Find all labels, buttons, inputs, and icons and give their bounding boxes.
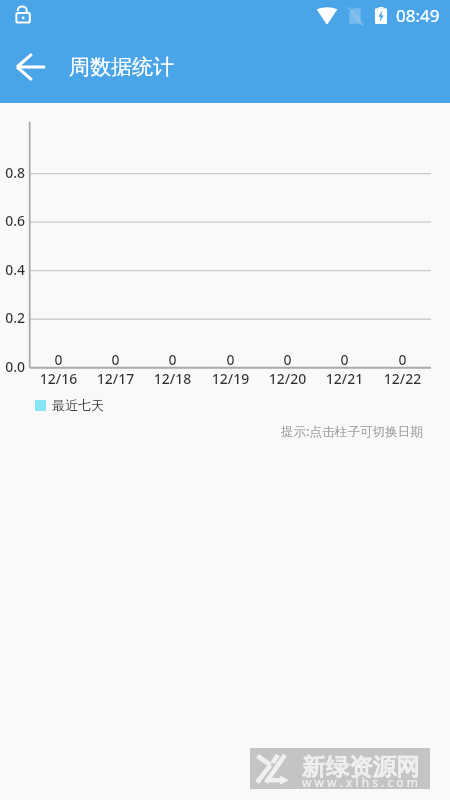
staticText: 0 (374, 350, 431, 369)
button[interactable]: 12/18 0 (144, 122, 201, 389)
staticText: 0 (202, 350, 259, 369)
staticText: 0.6 (0, 211, 25, 230)
staticText: w w w . x l h s . c o m (302, 774, 418, 790)
staticText: 0.0 (0, 357, 25, 376)
staticText: 0.4 (0, 260, 25, 279)
staticText: 提示:点击柱子可切换日期 (281, 423, 423, 440)
staticText: 周数据统计 (69, 54, 174, 80)
staticText: 0 (316, 350, 373, 369)
staticText: 12/16 (30, 369, 87, 388)
button[interactable]: 12/19 0 (202, 122, 259, 389)
staticText: 12/21 (316, 369, 373, 388)
staticText: 12/19 (202, 369, 259, 388)
button[interactable]: 12/22 0 (374, 122, 431, 389)
staticText: 0 (30, 350, 87, 369)
staticText: 0.2 (0, 308, 25, 327)
staticText: 08:49 (396, 4, 440, 27)
button[interactable]: 12/16 0 (30, 122, 87, 389)
staticText: 12/22 (374, 369, 431, 388)
staticText: 0 (87, 350, 144, 369)
button[interactable]: 12/20 0 (259, 122, 316, 389)
staticText: 0 (144, 350, 201, 369)
staticText: 12/18 (144, 369, 201, 388)
staticText: 最近七天 (52, 397, 104, 413)
staticText: 新绿资源网 (302, 752, 420, 782)
button[interactable]: Back (11, 47, 51, 87)
button[interactable]: 12/17 0 (87, 122, 144, 389)
staticText: 12/17 (87, 369, 144, 388)
staticText: 12/20 (259, 369, 316, 388)
staticText: 0 (259, 350, 316, 369)
button[interactable]: 12/21 0 (316, 122, 373, 389)
staticText: 0.8 (0, 163, 25, 182)
button[interactable]: 最近七天 (35, 397, 104, 413)
